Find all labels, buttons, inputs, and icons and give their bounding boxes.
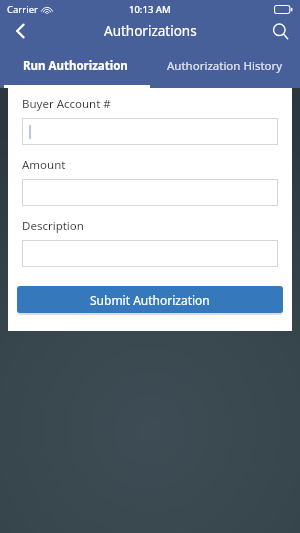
staticText: Amount [22, 157, 66, 173]
staticText: Carrier [7, 3, 38, 16]
button[interactable]: Submit Authorization [17, 286, 283, 313]
button[interactable] [22, 240, 278, 267]
staticText: Buyer Account # [22, 96, 111, 112]
staticText: 10:13 AM [129, 3, 171, 16]
staticText: Submit Authorization [90, 292, 210, 308]
staticText: Description [22, 218, 84, 234]
button[interactable]: Back [0, 18, 40, 44]
button[interactable]: Run Authorization [0, 44, 150, 88]
button[interactable]: Authorization History [150, 44, 300, 88]
button[interactable] [22, 118, 278, 145]
staticText: Authorization History [167, 58, 283, 74]
button[interactable] [22, 179, 278, 206]
button[interactable]: Search [260, 18, 300, 44]
staticText: Authorizations [104, 22, 197, 40]
staticText: Run Authorization [23, 58, 128, 74]
